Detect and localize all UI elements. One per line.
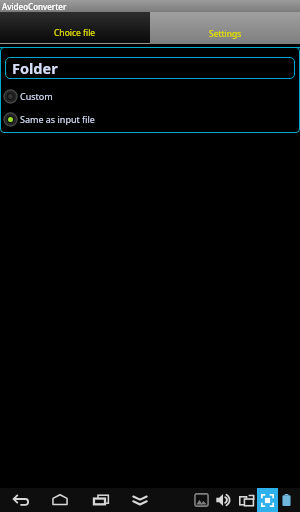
button[interactable]: Volume [213,488,235,512]
button[interactable]: Back [10,488,32,512]
staticText: Same as input file [20,113,95,125]
button[interactable]: Screenshot [191,488,213,512]
button[interactable]: Same as input file [0,109,300,129]
button[interactable]: Settings [150,12,300,44]
staticText: Settings [209,28,242,40]
button[interactable]: Home [49,488,71,512]
staticText: AvideoConverter [2,1,67,12]
button[interactable]: Rotate screen [236,488,258,512]
button[interactable]: Recents [90,488,112,512]
button[interactable]: Choice file [0,12,150,43]
button[interactable]: Fullscreen [257,488,278,512]
staticText: Custom [20,90,53,102]
staticText: Choice file [54,27,96,39]
staticText: Folder [12,58,58,78]
button[interactable]: Custom [0,86,300,106]
button[interactable]: Hide keyboard [129,488,151,512]
